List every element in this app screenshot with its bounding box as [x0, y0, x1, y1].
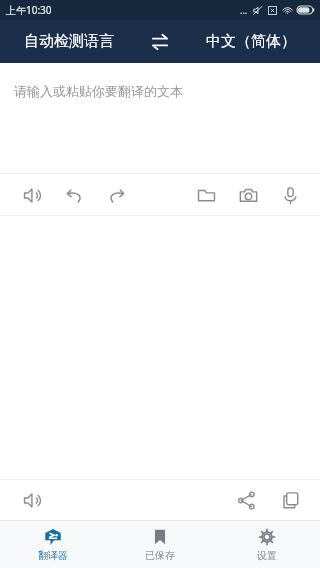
button[interactable]: 设置 — [213, 521, 320, 568]
button[interactable]: Listen — [14, 177, 50, 213]
button[interactable]: Documents — [188, 177, 224, 213]
button[interactable]: Camera — [230, 177, 266, 213]
staticText: 上午10:30 — [6, 3, 52, 17]
button[interactable]: 中文（简体） — [182, 20, 320, 63]
button[interactable]: Redo — [98, 177, 134, 213]
button[interactable]: Voice input — [272, 177, 308, 213]
staticText: 翻译器 — [38, 549, 68, 562]
button[interactable]: 自动检测语言 — [0, 20, 138, 63]
staticText: 已保存 — [145, 549, 175, 562]
button[interactable]: Share — [228, 482, 264, 518]
staticText: 设置 — [257, 549, 277, 562]
staticText: 自动检测语言 — [24, 32, 114, 51]
button[interactable]: Undo — [56, 177, 92, 213]
button[interactable]: 请输入或粘贴你要翻译的文本 — [0, 63, 320, 173]
button[interactable]: 翻译器 — [0, 521, 106, 568]
button[interactable]: 已保存 — [106, 521, 213, 568]
staticText: ... — [240, 4, 248, 16]
button[interactable]: Listen to translation — [14, 482, 50, 518]
button[interactable]: Copy — [272, 482, 308, 518]
staticText: 中文（简体） — [206, 32, 296, 51]
staticText: 请输入或粘贴你要翻译的文本 — [14, 83, 183, 99]
button[interactable]: Swap languages — [138, 20, 182, 63]
